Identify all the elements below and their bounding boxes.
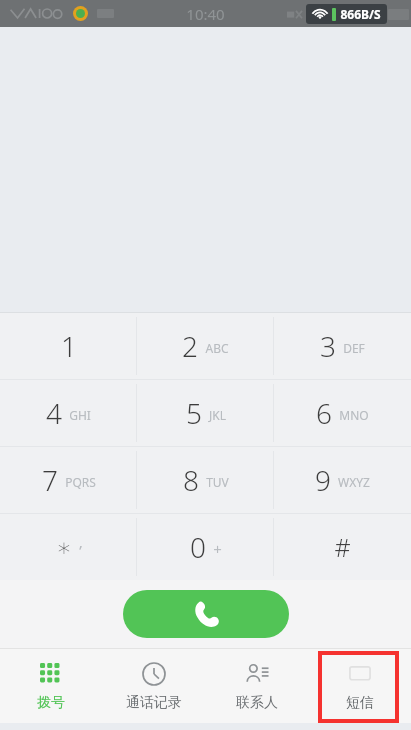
staticText: 5 bbox=[186, 394, 202, 432]
button[interactable]: 通话记录 bbox=[102, 649, 205, 723]
staticText: PQRS bbox=[65, 474, 96, 490]
staticText: 2 bbox=[182, 327, 198, 365]
staticText: # bbox=[334, 530, 351, 564]
button[interactable]: 1 bbox=[0, 313, 137, 379]
staticText: GHI bbox=[69, 407, 91, 423]
staticText: DEF bbox=[343, 340, 365, 356]
button[interactable]: 0 bbox=[137, 514, 274, 580]
staticText: ABC bbox=[205, 340, 229, 356]
button[interactable]: ∗ bbox=[0, 514, 137, 580]
button[interactable]: # bbox=[274, 514, 411, 580]
button[interactable]: 4 bbox=[0, 380, 137, 446]
staticText: ∗ bbox=[56, 533, 72, 562]
button[interactable]: 2 bbox=[137, 313, 274, 379]
staticText: 3 bbox=[320, 327, 336, 365]
staticText: 9 bbox=[315, 461, 331, 499]
button[interactable]: 6 bbox=[274, 380, 411, 446]
staticText: 6 bbox=[316, 394, 332, 432]
staticText: + bbox=[213, 539, 222, 559]
button[interactable]: 9 bbox=[274, 447, 411, 513]
staticText: 通话记录 bbox=[126, 694, 182, 712]
button[interactable]: Call bbox=[123, 590, 289, 638]
staticText: 联系人 bbox=[236, 694, 278, 712]
staticText: WXYZ bbox=[338, 474, 370, 490]
staticText: 0 bbox=[190, 528, 206, 566]
staticText: JKL bbox=[209, 407, 226, 423]
button[interactable]: 8 bbox=[137, 447, 274, 513]
button[interactable]: 短信 bbox=[308, 649, 411, 723]
staticText: ’ bbox=[79, 540, 82, 560]
staticText: 8 bbox=[183, 461, 199, 499]
staticText: MNO bbox=[339, 407, 369, 423]
staticText: 拨号 bbox=[37, 694, 65, 712]
button[interactable]: 拨号 bbox=[0, 649, 102, 723]
staticText: 短信 bbox=[346, 694, 374, 712]
staticText: 1 bbox=[61, 327, 77, 365]
staticText: 7 bbox=[42, 461, 58, 499]
button[interactable]: 联系人 bbox=[205, 649, 308, 723]
button[interactable]: 7 bbox=[0, 447, 137, 513]
staticText: 866B/S bbox=[340, 6, 381, 22]
staticText: 10:40 bbox=[186, 4, 225, 24]
staticText: TUV bbox=[206, 474, 229, 490]
button[interactable]: 3 bbox=[274, 313, 411, 379]
button[interactable]: 5 bbox=[137, 380, 274, 446]
staticText: 4 bbox=[46, 394, 62, 432]
